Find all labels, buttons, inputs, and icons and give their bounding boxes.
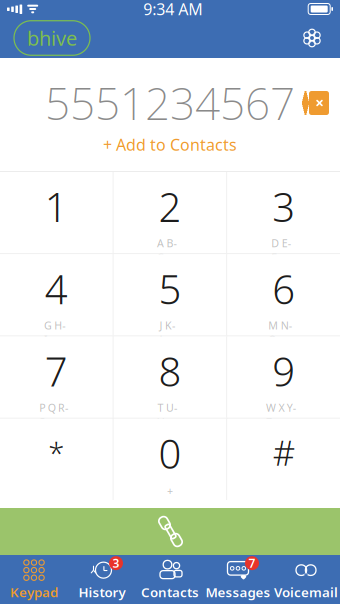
staticText: PQRS	[39, 401, 73, 415]
staticText: 3	[112, 555, 119, 571]
button[interactable]: 5	[114, 254, 226, 335]
staticText: 4	[45, 262, 68, 315]
button[interactable]: 1	[0, 172, 113, 253]
staticText: +	[167, 484, 173, 498]
button[interactable]: Delete	[295, 84, 336, 122]
button[interactable]: Contacts	[136, 557, 204, 602]
staticText: JKL	[160, 318, 180, 333]
button[interactable]: 3	[68, 557, 136, 602]
staticText: 9:34 AM	[143, 0, 203, 20]
staticText: Messages	[205, 583, 270, 601]
staticText: Voicemail	[274, 583, 338, 601]
staticText: History	[78, 583, 125, 601]
staticText: WXYZ	[266, 401, 301, 415]
staticText: 9	[272, 344, 295, 398]
staticText: 5	[158, 262, 181, 315]
staticText: bhive	[27, 25, 77, 51]
button[interactable]: 7	[204, 557, 272, 602]
staticText: 1	[45, 180, 68, 233]
staticText: Keypad	[10, 583, 58, 601]
button[interactable]: Call	[0, 508, 340, 555]
button[interactable]: 3	[227, 172, 340, 253]
staticText: GHI	[44, 318, 69, 333]
staticText: 3	[272, 180, 295, 233]
staticText: 2	[158, 180, 181, 233]
staticText: ABC	[157, 236, 183, 250]
staticText: 6	[272, 262, 295, 315]
button[interactable]: + Add to Contacts	[93, 131, 247, 158]
button[interactable]: Voicemail	[272, 557, 340, 602]
button[interactable]: Settings	[294, 20, 330, 56]
staticText: Contacts	[141, 583, 199, 601]
button[interactable]: 6	[227, 254, 340, 335]
staticText: 7	[248, 555, 255, 571]
button[interactable]: 8	[114, 336, 226, 418]
button[interactable]: 9	[227, 336, 340, 418]
button[interactable]: 4	[0, 254, 113, 335]
button[interactable]: 0	[114, 419, 226, 500]
button[interactable]: #	[227, 419, 340, 500]
staticText: 5551234567	[45, 74, 295, 132]
button[interactable]: *	[0, 419, 113, 500]
staticText: 0	[158, 427, 181, 480]
button[interactable]: Keypad	[0, 557, 68, 602]
button[interactable]: bhive	[14, 21, 90, 55]
staticText: TUV	[158, 401, 182, 415]
staticText: #	[273, 429, 295, 475]
button[interactable]: 2	[114, 172, 226, 253]
staticText: 7	[45, 344, 68, 398]
staticText: + Add to Contacts	[103, 134, 237, 155]
button[interactable]: 7	[0, 336, 113, 418]
staticText: 8	[158, 344, 181, 398]
staticText: MNO	[268, 318, 299, 333]
staticText: *	[48, 433, 64, 472]
staticText: DEF	[271, 236, 296, 250]
